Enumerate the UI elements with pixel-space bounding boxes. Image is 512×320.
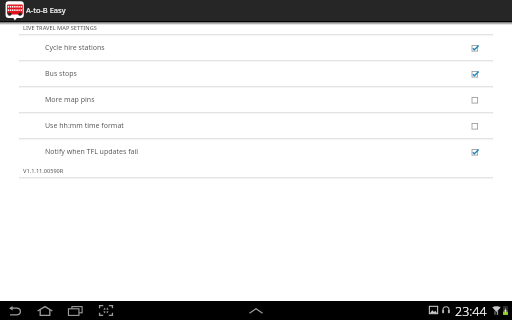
button[interactable]: A-to-B Easy: [0, 0, 72, 21]
button[interactable]: More map pins: [0, 87, 512, 112]
button[interactable]: Status: 23:44, Wi-Fi connected, charging: [424, 301, 508, 320]
staticText: More map pins: [45, 95, 95, 105]
button[interactable]: Cycle hire stations: [0, 35, 512, 60]
staticText: Cycle hire stations: [45, 43, 105, 53]
button[interactable]: Use hh:mm time format: [0, 113, 512, 138]
staticText: A-to-B Easy: [26, 5, 66, 15]
button[interactable]: Recent apps: [68, 306, 83, 316]
button[interactable]: Notify when TFL updates fail: [0, 139, 512, 164]
staticText: Bus stops: [45, 69, 77, 79]
button[interactable]: Bus stops: [0, 61, 512, 86]
button[interactable]: Expand system bar: [249, 307, 263, 315]
button[interactable]: Screenshot: [99, 305, 113, 316]
staticText: Notify when TFL updates fail: [45, 147, 139, 157]
button[interactable]: Back: [9, 306, 22, 316]
staticText: 23:44: [455, 303, 487, 320]
button[interactable]: Home: [37, 306, 53, 316]
staticText: V1.1.11.00590R: [23, 167, 64, 175]
staticText: Use hh:mm time format: [45, 121, 124, 131]
staticText: LIVE TRAVEL MAP SETTINGS: [23, 24, 97, 32]
